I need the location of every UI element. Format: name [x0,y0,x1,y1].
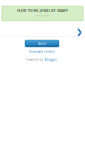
button[interactable]: View web version [27,49,57,54]
button[interactable]: Blogger [44,57,56,62]
staticText: Blogger [44,57,56,62]
button[interactable]: Home [25,40,59,47]
staticText: View web version [29,49,55,54]
button[interactable]: Next page [73,25,85,40]
staticText: Home [37,41,46,46]
staticText: jewelry diary [35,14,49,17]
staticText: Powered by [25,57,43,62]
staticText: NEW YORK JEWELRY DIARY [17,8,68,13]
